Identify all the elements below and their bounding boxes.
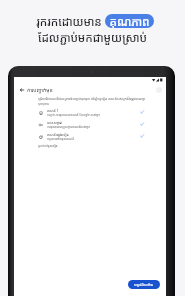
button[interactable]: លេខសម្ងាត់	[38, 118, 149, 130]
button[interactable]: គណនីផ្សេងទៀត	[38, 130, 149, 142]
staticText: គណនី 1	[47, 108, 59, 113]
staticText: រុករកដោយមាន	[36, 14, 102, 28]
staticText: ការចូលដោយប្រូនាមួយគណនីរបស់អ្នក	[47, 125, 91, 129]
button[interactable]: Account	[156, 87, 162, 93]
staticText: ស្រាប់បន្ថែមទៀត	[38, 144, 58, 148]
staticText: ជ្រើសរើសគណនីដែលអ្នកចង់បញ្ជាក់មុខចូល ដើម្…	[38, 96, 149, 106]
staticText: គណនីផ្សេងទៀត	[47, 132, 69, 137]
button[interactable]: គណនី 1	[38, 106, 149, 118]
staticText: ការបញ្ជាក់មុខ	[27, 86, 53, 93]
staticText: ដែលភ្ជាប់មកជាមួយស្រាប់	[38, 30, 147, 46]
staticText: បន្តដោយមិនចូលគណនី	[47, 137, 75, 141]
button[interactable]: Back	[18, 86, 26, 94]
staticText: បន្តដោយមិន	[134, 282, 154, 287]
staticText: បញ្ជាក់ ការចូលដោយគណនី Google របស់អ្នក	[47, 113, 101, 117]
staticText: គុណភាព	[109, 14, 150, 28]
button[interactable]: បន្តដោយមិន	[128, 280, 160, 289]
staticText: លេខសម្ងាត់	[47, 120, 63, 125]
